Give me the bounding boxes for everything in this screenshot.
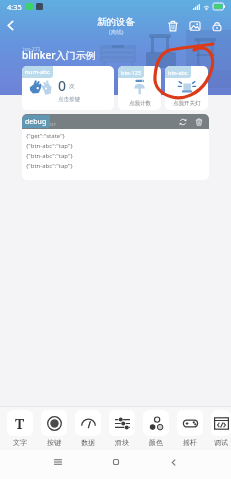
button[interactable]: 颜色: [143, 407, 169, 447]
staticText: 调试: [214, 438, 228, 447]
button[interactable]: 数据: [75, 407, 101, 447]
staticText: num-abc: [25, 68, 50, 76]
staticText: 文字: [13, 438, 27, 447]
staticText: 点我开关灯: [173, 100, 201, 107]
button[interactable]: btn-123: [118, 66, 161, 110]
staticText: 按键: [47, 438, 61, 447]
staticText: 滑块: [115, 438, 129, 447]
staticText: or: [50, 120, 57, 128]
staticText: {"btn-abc":"tap"}: [26, 152, 73, 160]
staticText: 4:35: [7, 2, 22, 12]
staticText: 摇杆: [183, 438, 197, 447]
button[interactable]: Recent apps: [46, 450, 70, 474]
button[interactable]: btn-abc: [165, 66, 208, 110]
staticText: {"btn-abc":"tap"}: [26, 162, 73, 170]
button[interactable]: Refresh: [177, 116, 189, 128]
button[interactable]: num-abc: [22, 66, 114, 110]
button[interactable]: Back: [161, 450, 185, 474]
staticText: (离线): [109, 28, 124, 36]
staticText: 颜色: [149, 438, 163, 447]
staticText: 次: [69, 83, 75, 90]
button[interactable]: Clear log: [193, 116, 205, 128]
staticText: btn-123: [121, 69, 141, 76]
staticText: 数据: [81, 438, 95, 447]
staticText: 新的设备: [97, 16, 135, 28]
staticText: {"btn-abc":"tap"}: [26, 142, 73, 150]
button[interactable]: Lock: [206, 15, 228, 37]
button[interactable]: 按键: [41, 407, 67, 447]
button[interactable]: T: [7, 407, 33, 447]
button[interactable]: Photo: [184, 15, 206, 37]
button[interactable]: Delete: [162, 15, 184, 37]
staticText: btn-abc: [168, 69, 188, 76]
button[interactable]: 调试: [211, 407, 231, 447]
button[interactable]: Home: [104, 450, 128, 474]
button[interactable]: 摇杆: [177, 407, 203, 447]
staticText: debug: [25, 117, 47, 127]
button[interactable]: Back: [1, 16, 19, 34]
staticText: 点击按键: [58, 96, 80, 103]
staticText: tex-272: [23, 46, 41, 53]
staticText: 0: [58, 76, 67, 95]
staticText: {"get":"state"}: [26, 132, 65, 140]
staticText: T: [15, 414, 25, 433]
button[interactable]: 滑块: [109, 407, 135, 447]
staticText: 点我计数: [129, 100, 151, 107]
staticText: blinker入门示例: [22, 48, 96, 62]
